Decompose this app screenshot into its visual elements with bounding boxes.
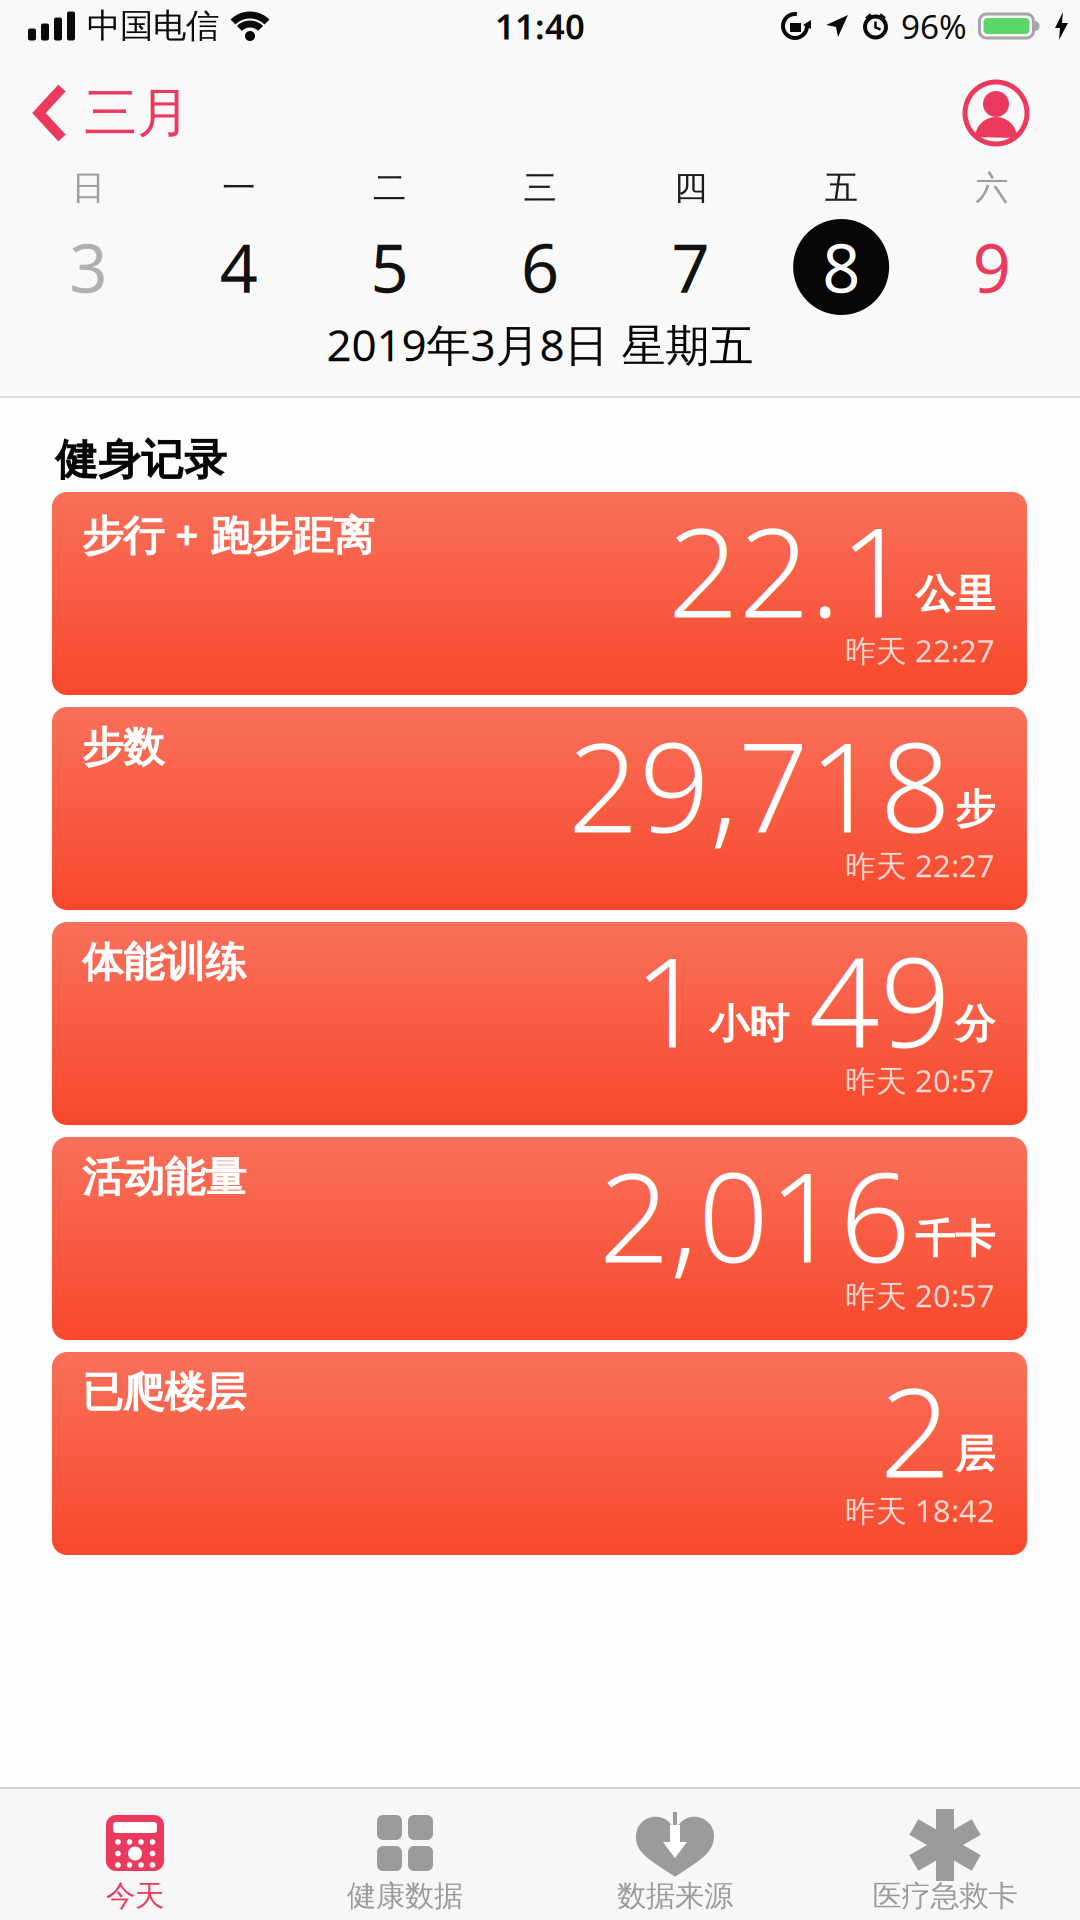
button[interactable]: 5 [341,219,437,315]
staticText: 4 [220,223,258,311]
staticText: 活动能量 [82,1152,246,1203]
staticText: 22.1 [668,487,911,652]
staticText: 7 [672,223,710,311]
button[interactable]: 9 [944,219,1040,315]
staticText: 中国电信 [87,5,219,46]
staticText: 昨天 20:57 [845,1060,995,1101]
button[interactable] [962,79,1080,147]
staticText: 29,718 [568,702,951,867]
staticText: 2 [880,1347,951,1512]
staticText: 2019年3月8日 星期五 [326,315,753,373]
button[interactable]: 活动能量 [52,1137,1027,1340]
staticText: 千卡 [915,1215,995,1264]
staticText: 2,016 [599,1132,911,1297]
button[interactable]: 步行 + 跑步距离 [52,492,1027,695]
button[interactable]: 已爬楼层 [52,1352,1027,1555]
staticText: 健康数据 [347,1878,463,1914]
staticText: 49 [809,917,951,1082]
staticText: 三 [523,167,556,208]
staticText: 五 [825,167,858,208]
staticText: 步数 [82,722,164,773]
staticText: 二 [373,167,406,208]
staticText: 体能训练 [82,937,246,988]
button[interactable]: 三月 [0,80,190,146]
staticText: 数据来源 [617,1878,733,1914]
button[interactable]: 7 [643,219,739,315]
staticText: 今天 [106,1878,164,1914]
staticText: 1 [634,917,705,1082]
button[interactable]: 健康数据 [270,1812,540,1914]
staticText: 四 [674,167,707,208]
staticText: 公里 [915,570,995,619]
staticText: 昨天 18:42 [845,1490,995,1531]
staticText: 3 [69,223,107,311]
staticText: 三月 [84,80,190,146]
staticText: 昨天 20:57 [845,1275,995,1316]
button[interactable]: 体能训练 [52,922,1027,1125]
staticText: 六 [975,167,1008,208]
staticText: 96% [901,4,967,48]
staticText: 层 [955,1430,995,1479]
staticText: 11:40 [495,3,585,49]
button[interactable]: 4 [191,219,287,315]
button[interactable]: 8 [793,219,889,315]
staticText: 医疗急救卡 [872,1878,1017,1914]
button[interactable]: 数据来源 [540,1812,810,1914]
staticText: 5 [370,223,408,311]
button[interactable]: 步数 [52,707,1027,910]
staticText: 日 [72,167,105,208]
button[interactable]: 3 [40,219,136,315]
staticText: 健身记录 [55,434,227,486]
staticText: 昨天 22:27 [845,630,995,671]
staticText: 9 [973,223,1011,311]
staticText: 昨天 22:27 [845,845,995,886]
staticText: 步 [955,785,995,834]
staticText: 步行 + 跑步距离 [82,507,374,562]
button[interactable]: 今天 [0,1812,270,1914]
staticText: 8 [822,223,860,311]
staticText: 一 [222,167,255,208]
button[interactable]: 6 [492,219,588,315]
staticText: 已爬楼层 [82,1367,246,1418]
button[interactable]: 医疗急救卡 [810,1812,1080,1914]
staticText: 小时 [709,1000,789,1049]
staticText: 分 [955,1000,995,1049]
staticText: 6 [521,223,559,311]
